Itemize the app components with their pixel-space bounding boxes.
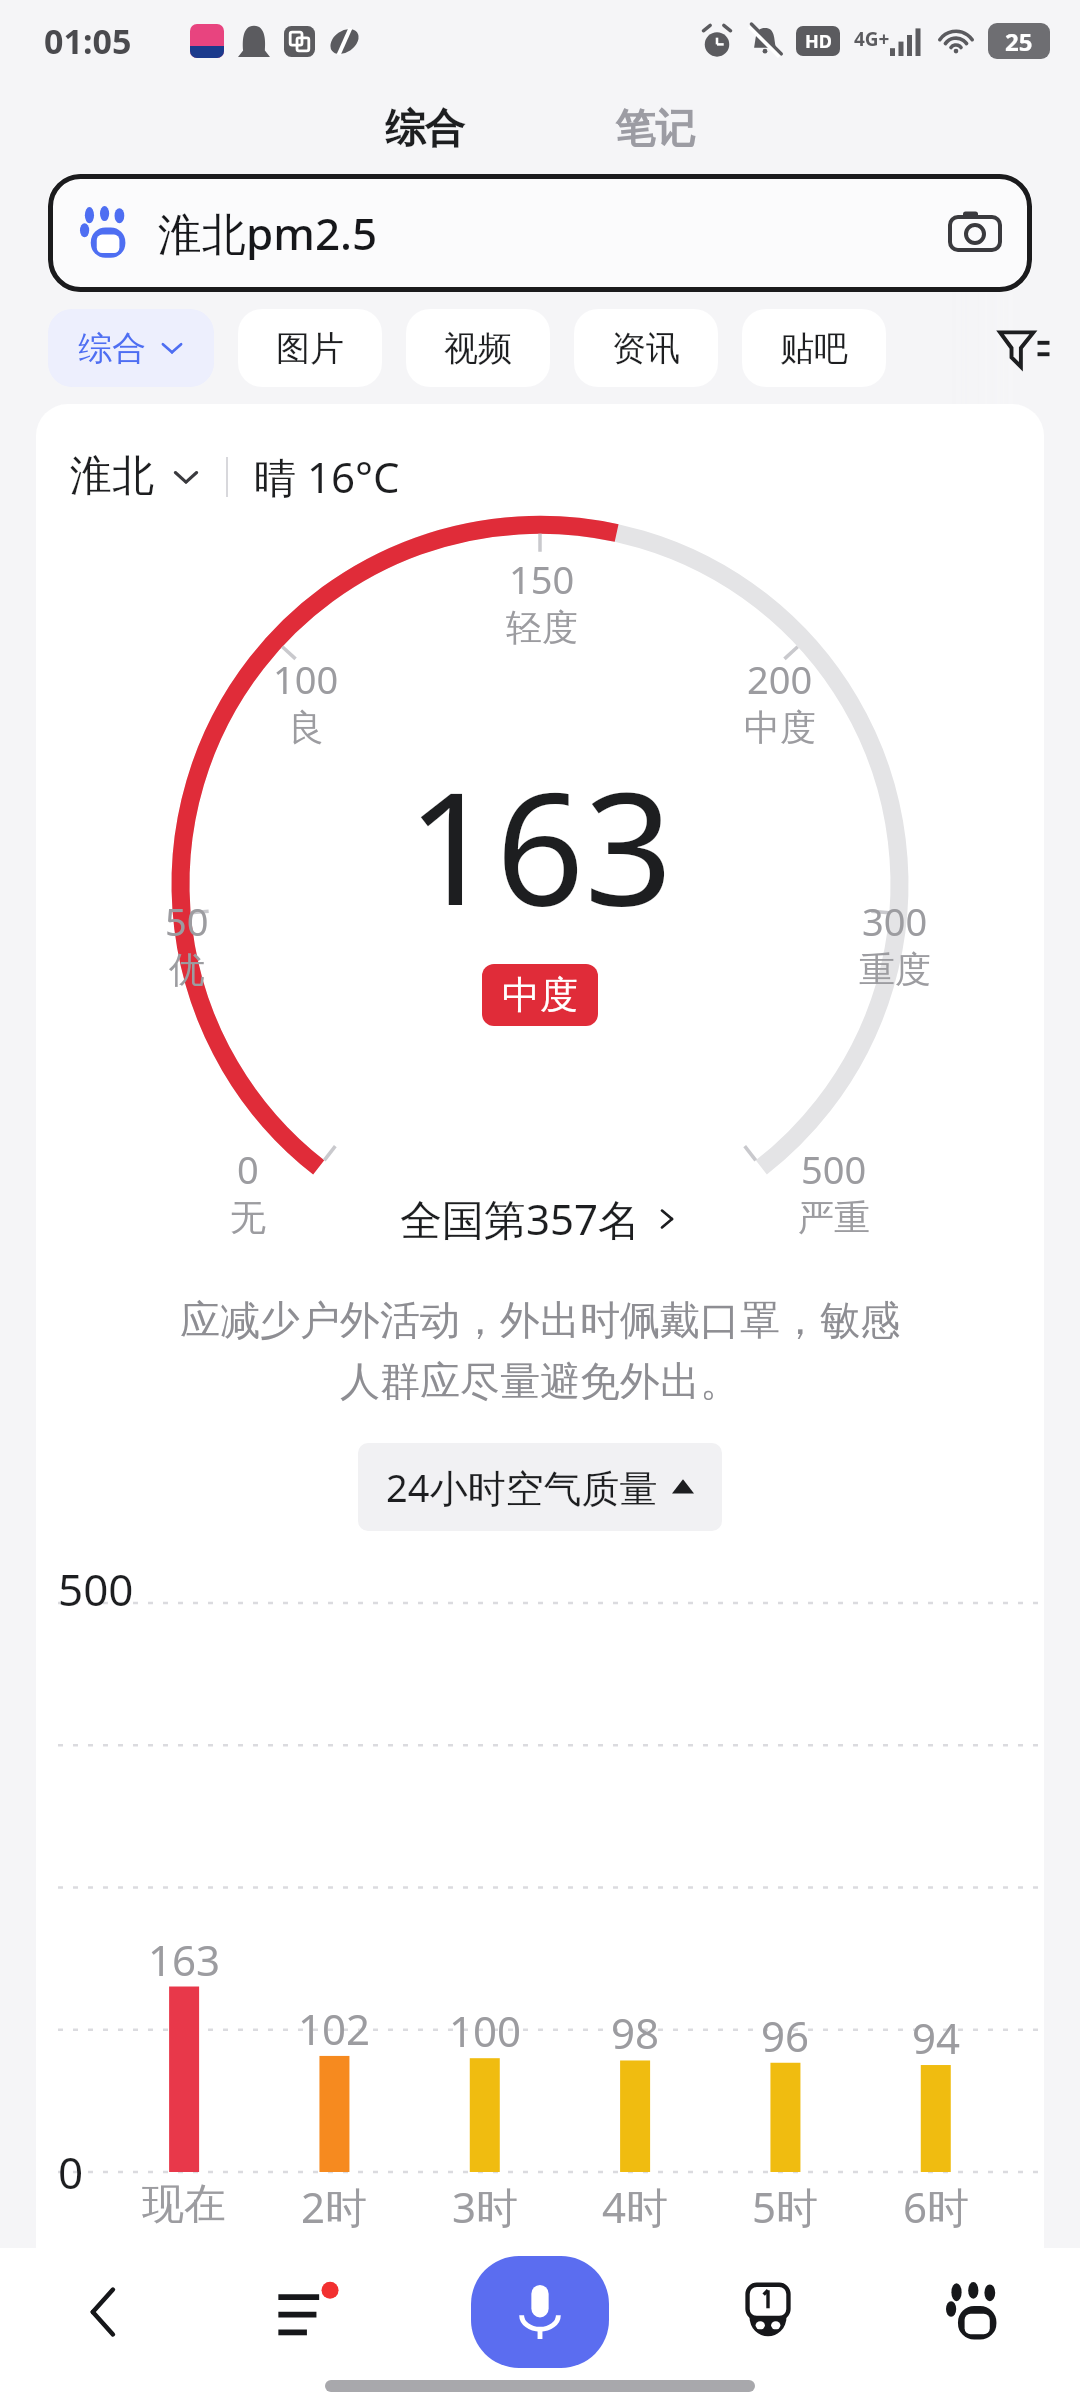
button[interactable]: 资讯 [574,309,718,387]
staticText: 0 [58,2142,84,2202]
staticText: 2时 [301,2178,368,2235]
staticText: 50 [165,895,209,947]
button[interactable]: 淮北pm2.5 [48,174,1032,292]
staticText: HD [805,29,832,54]
staticText: 500 [801,1143,867,1195]
staticText: 25 [1005,25,1033,58]
button[interactable]: 淮北 [70,450,200,503]
button[interactable]: Voice search [471,2256,609,2368]
staticText: 98 [611,2004,660,2061]
button[interactable]: 视频 [406,309,550,387]
staticText: 5时 [752,2178,819,2235]
staticText: 严重 [798,1195,870,1240]
staticText: 500 [58,1559,134,1619]
staticText: 贴吧 [780,327,848,370]
button[interactable]: 全国第357名 [400,1190,681,1247]
staticText: 良 [288,705,324,750]
staticText: 全国第357名 [400,1190,641,1247]
staticText: 中度 [744,705,816,750]
staticText: 轻度 [506,605,578,650]
staticText: 笔记 [615,103,695,153]
staticText: 重度 [859,947,931,992]
staticText: 无 [230,1195,266,1240]
staticText: 100 [449,2002,522,2059]
button[interactable]: 24小时空气质量 [358,1443,722,1531]
staticText: 图片 [276,327,344,370]
button[interactable]: 笔记 [585,93,725,163]
staticText: 3时 [452,2178,519,2235]
staticText: 视频 [444,327,512,370]
staticText: 102 [298,2000,371,2057]
staticText: 163 [407,739,673,950]
button[interactable]: 综合 [355,93,495,163]
button[interactable]: Filter [988,312,1060,384]
staticText: 94 [912,2009,961,2066]
staticText: 现在 [142,2178,226,2231]
button[interactable]: Menu [207,2248,415,2376]
staticText: 24小时空气质量 [386,1461,658,1513]
staticText: 淮北pm2.5 [158,203,378,263]
button[interactable]: 贴吧 [742,309,886,387]
staticText: 300 [862,895,928,947]
staticText: 150 [509,553,575,605]
button[interactable]: 图片 [238,309,382,387]
button[interactable]: Back [0,2248,207,2376]
staticText: 优 [169,947,205,992]
staticText: 综合 [385,103,465,153]
staticText: 资讯 [612,327,680,370]
button[interactable]: 综合 [48,309,214,387]
staticText: 综合 [78,327,146,370]
staticText: 200 [747,653,813,705]
staticText: 淮北 [70,450,154,503]
staticText: 6时 [903,2178,970,2235]
staticText: 0 [237,1143,259,1195]
staticText: 中度 [502,971,578,1019]
staticText: 应减少户外活动，外出时佩戴口罩，敏感 人群应尽量避免外出。 [64,1295,1016,1407]
staticText: 晴 16°C [254,448,400,505]
staticText: 96 [761,2007,810,2064]
button[interactable]: Profile [872,2248,1080,2376]
staticText: 01:05 [44,18,132,64]
staticText: 100 [273,653,339,705]
staticText: 4时 [602,2178,669,2235]
button[interactable]: Camera search [946,204,1004,262]
staticText: 4G+ [854,26,890,52]
button[interactable]: Tabs [664,2248,872,2376]
staticText: 163 [148,1931,221,1988]
